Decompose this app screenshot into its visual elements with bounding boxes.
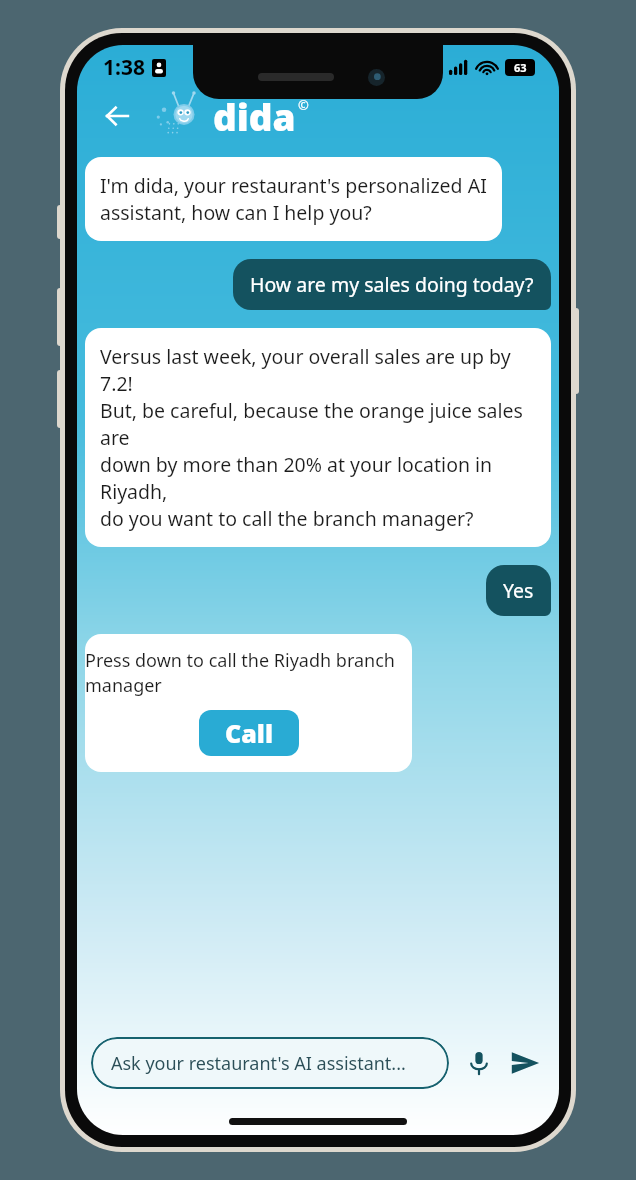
button[interactable]: Yes — [486, 565, 551, 616]
staticText: 1:38 — [103, 53, 145, 82]
button[interactable]: Call — [199, 710, 299, 756]
button[interactable]: How are my sales doing today? — [233, 259, 551, 310]
staticText: How are my sales doing today? — [250, 271, 534, 298]
staticText: Versus last week, your overall sales are… — [100, 343, 536, 532]
staticText: dida — [213, 91, 296, 141]
staticText: Press down to call the Riyadh branch man… — [85, 648, 412, 698]
staticText: I'm dida, your restaurant's personalized… — [100, 172, 487, 226]
button[interactable]: Send — [505, 1043, 545, 1083]
button[interactable]: Voice input — [461, 1045, 497, 1081]
button[interactable]: I'm dida, your restaurant's personalized… — [85, 157, 502, 241]
staticText: © — [298, 96, 309, 114]
staticText: Call — [225, 716, 273, 750]
staticText: 63 — [514, 60, 527, 75]
button[interactable]: Versus last week, your overall sales are… — [85, 328, 551, 547]
button[interactable]: Ask your restaurant's AI assistant... — [91, 1037, 449, 1089]
staticText: Ask your restaurant's AI assistant... — [111, 1051, 406, 1076]
staticText: Yes — [503, 577, 534, 604]
button[interactable]: Back — [95, 94, 139, 138]
